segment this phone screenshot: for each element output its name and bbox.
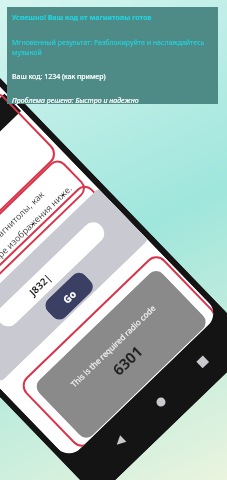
staticText: This is the required radio code bbox=[68, 302, 158, 389]
button[interactable]: Go bbox=[42, 269, 97, 323]
staticText: 6301 bbox=[108, 341, 147, 379]
button[interactable]: J832| bbox=[0, 218, 109, 331]
staticText: на фото/в примере изображения ниже. bbox=[0, 182, 74, 311]
staticText: Мгновенный результат: Разблокируйте и на… bbox=[12, 38, 218, 58]
staticText: Ваш код: 1234 (как пример) bbox=[12, 72, 106, 82]
button[interactable]: Back bbox=[109, 432, 129, 452]
button[interactable]: Home bbox=[150, 392, 170, 412]
staticText: J832| bbox=[26, 271, 54, 299]
staticText: Go bbox=[60, 287, 79, 306]
staticText: Проблема решена: Быстро и надежно bbox=[12, 96, 139, 104]
staticText: Введите код магнитолы, как bbox=[0, 188, 46, 283]
button[interactable]: Recent apps bbox=[192, 352, 212, 372]
staticText: Успешно! Ваш код от магнитолы готов bbox=[12, 13, 152, 23]
